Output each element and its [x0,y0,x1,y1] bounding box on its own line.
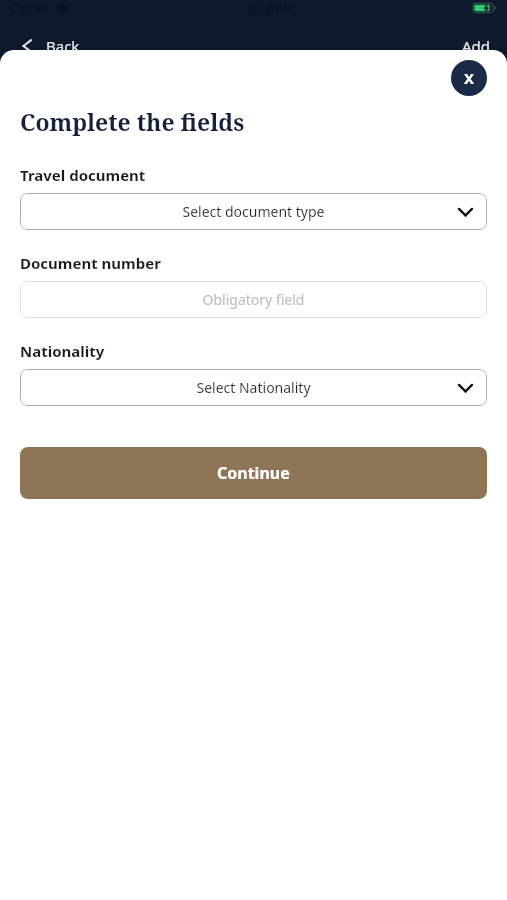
button[interactable]: Back [16,34,40,58]
staticText: Nationality [20,341,105,361]
staticText: Carrier [10,0,50,16]
staticText: Continue [217,462,290,484]
staticText: Obligatory field [20,290,487,309]
button[interactable]: Select document type [20,193,487,230]
staticText: Travel document [20,165,146,185]
staticText: Document number [20,253,161,273]
staticText: Add [462,36,491,56]
staticText: Select document type [20,202,487,221]
button[interactable]: Select Nationality [20,369,487,406]
staticText: Select Nationality [20,378,487,397]
staticText: Back [46,36,80,56]
staticText: 3:14 PM [248,0,294,16]
staticText: Complete the fields [20,106,245,137]
button[interactable]: Continue [20,447,487,499]
button[interactable]: Close [451,60,487,96]
staticText: X [464,68,475,88]
button[interactable]: Obligatory field [20,281,487,318]
